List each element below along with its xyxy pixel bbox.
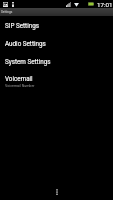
staticText: 17:01 xyxy=(97,1,112,8)
staticText: System Settings xyxy=(5,58,51,65)
button[interactable]: System Settings xyxy=(0,54,113,72)
staticText: Voicemail Number xyxy=(5,84,35,88)
button[interactable]: Voicemail xyxy=(0,71,113,89)
staticText: Audio Settings xyxy=(5,40,46,47)
staticText: Voicemail xyxy=(5,75,33,82)
staticText: Settings xyxy=(1,10,13,14)
staticText: SIP Settings xyxy=(5,22,39,29)
button[interactable]: SIP Settings xyxy=(0,18,113,36)
button[interactable]: Audio Settings xyxy=(0,36,113,54)
button[interactable]: More options xyxy=(45,184,69,200)
